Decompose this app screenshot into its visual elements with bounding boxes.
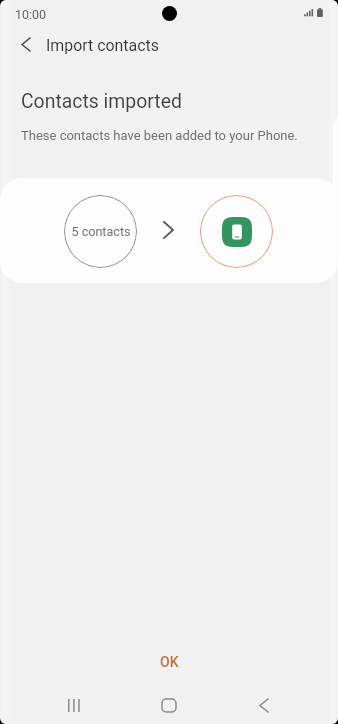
staticText: OK — [160, 654, 179, 670]
button[interactable]: OK — [0, 644, 338, 680]
staticText: 10:00 — [15, 7, 47, 22]
button[interactable]: Home — [121, 690, 216, 720]
staticText: Contacts imported — [21, 90, 182, 113]
staticText: These contacts have been added to your P… — [21, 128, 298, 143]
button[interactable]: Recent apps — [27, 690, 121, 720]
staticText: 5 contacts — [71, 224, 131, 239]
button[interactable]: Back — [216, 690, 311, 720]
staticText: Import contacts — [46, 36, 159, 55]
button[interactable]: Back — [10, 26, 42, 62]
